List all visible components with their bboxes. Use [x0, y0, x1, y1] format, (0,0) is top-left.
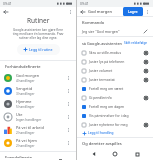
- button[interactable]: God morgen: [0, 71, 76, 84]
- button[interactable]: Juster nyhetene for meg: [77, 120, 153, 129]
- button[interactable]: Home: [110, 149, 120, 159]
- staticText: Fortell meg om været: [89, 86, 142, 91]
- staticText: Sengetid: [16, 86, 33, 91]
- staticText: 2 handlinger: [16, 144, 35, 148]
- staticText: Fortell meg om dagen: [89, 104, 142, 109]
- button[interactable]: Hjemme: [0, 97, 76, 110]
- staticText: Ute: [16, 112, 23, 117]
- button[interactable]: Back: [2, 8, 10, 16]
- button[interactable]: Vis påminnelser for i dag: [77, 111, 153, 120]
- staticText: Egendefinerte: [5, 155, 33, 158]
- staticText: Ingen handlinger: [16, 118, 42, 122]
- button[interactable]: More options: [64, 74, 72, 82]
- staticText: Juster lys på telefonen: [89, 59, 142, 64]
- staticText: Vis påminnelser for i dag: [89, 113, 142, 118]
- staticText: 2 handlinger: [16, 131, 35, 135]
- button[interactable]: Ute: [0, 110, 76, 123]
- staticText: Juster volumet: [89, 68, 142, 73]
- staticText: Rutiner: [27, 16, 50, 25]
- staticText: Legg til handling: [88, 131, 114, 135]
- staticText: God morgen: [88, 9, 113, 14]
- staticText: Forhåndsdefinerte: [5, 64, 41, 69]
- button[interactable]: På vei til arbeid: [0, 123, 76, 136]
- button[interactable]: More options: [64, 100, 72, 108]
- button[interactable]: Legg til rutine: [17, 44, 60, 55]
- button[interactable]: More options: [64, 126, 72, 134]
- button[interactable]: More options: [64, 139, 72, 147]
- button[interactable]: Lagre: [123, 7, 143, 16]
- button[interactable]: Jeg sier "God morgen": [77, 27, 153, 36]
- button[interactable]: Recents: [132, 149, 142, 159]
- staticText: Skru av stille-modus: [89, 50, 142, 55]
- button[interactable]: Juster termostat: [77, 75, 153, 84]
- staticText: Kommando: [82, 20, 105, 25]
- staticText: Google-assistenten kan gjøre flere ting …: [10, 28, 66, 40]
- staticText: Gi pendlerinfo: [89, 95, 142, 100]
- button[interactable]: Fortell meg om været: [77, 84, 153, 93]
- staticText: På vei til arbeid: [16, 125, 44, 130]
- button[interactable]: Settings: [142, 58, 149, 65]
- button[interactable]: Skift rekkefølge: [123, 40, 149, 46]
- button[interactable]: Fortell meg om dagen: [77, 102, 153, 111]
- button[interactable]: Juster lys på telefonen: [77, 57, 153, 66]
- button[interactable]: Settings: [142, 94, 149, 101]
- staticText: 09:41: [3, 1, 12, 6]
- staticText: 09:41: [80, 1, 89, 6]
- button[interactable]: Gi pendlerinfo: [77, 93, 153, 102]
- button[interactable]: Edit: [142, 28, 149, 35]
- button[interactable]: Legg til handling: [77, 129, 153, 137]
- staticText: 5 handlinger: [16, 105, 35, 109]
- button[interactable]: More options: [64, 113, 72, 121]
- button[interactable]: Settings: [142, 121, 149, 128]
- button[interactable]: Settings: [142, 49, 149, 56]
- staticText: Juster nyhetene for meg: [89, 122, 142, 127]
- button[interactable]: More options: [143, 8, 151, 16]
- button[interactable]: På vei hjem: [0, 136, 76, 149]
- staticText: Skift rekkefølge: [124, 41, 148, 45]
- button[interactable]: More options: [66, 8, 74, 16]
- staticText: Jeg sier "God morgen": [82, 29, 142, 34]
- staticText: 4 handlinger: [16, 79, 35, 83]
- staticText: Og deretter avspilles: [82, 141, 122, 146]
- staticText: 3 handlinger: [16, 92, 35, 96]
- button[interactable]: Back: [79, 8, 87, 16]
- staticText: Hjemme: [16, 99, 32, 104]
- staticText: Juster termostat: [89, 77, 142, 82]
- staticText: God morgen: [16, 73, 40, 78]
- button[interactable]: Settings: [142, 67, 149, 74]
- staticText: Legg til rutine: [29, 47, 53, 52]
- staticText: så Google-assistenten: [82, 41, 122, 46]
- button[interactable]: More options: [64, 87, 72, 95]
- button[interactable]: Back: [89, 149, 99, 159]
- button[interactable]: Skru av stille-modus: [77, 48, 153, 57]
- button[interactable]: Settings: [142, 76, 149, 83]
- staticText: Lagre: [128, 9, 138, 14]
- button[interactable]: Sengetid: [0, 84, 76, 97]
- staticText: På vei hjem: [16, 138, 37, 143]
- button[interactable]: Juster volumet: [77, 66, 153, 75]
